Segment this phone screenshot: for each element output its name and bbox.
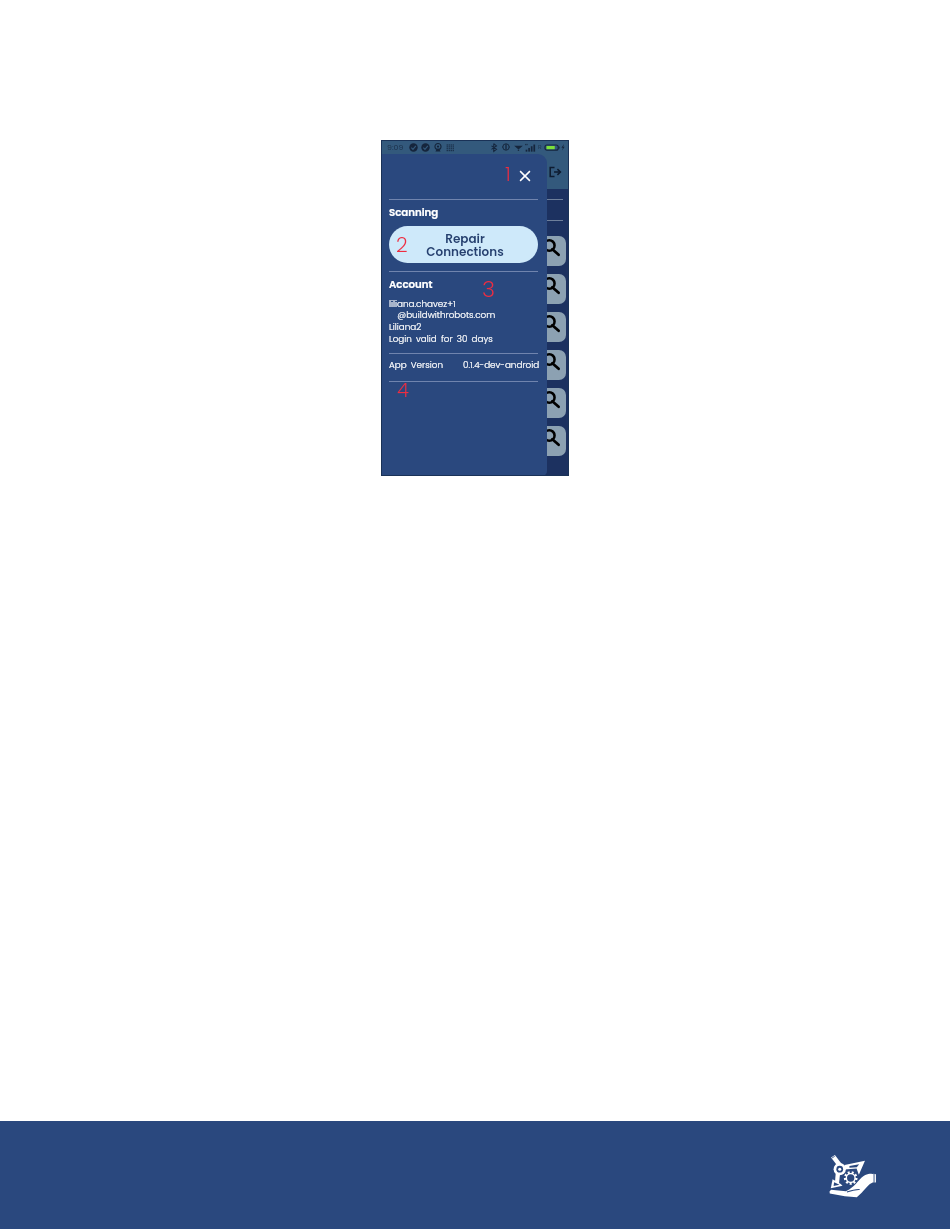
button[interactable]: Log out [549, 166, 561, 178]
staticText: 4 [397, 376, 410, 403]
button[interactable]: Search [522, 426, 566, 456]
staticText: 3 [482, 274, 496, 305]
staticText: Repair Connections [426, 230, 504, 260]
staticText: 1 [505, 161, 511, 188]
staticText: Account [389, 277, 433, 291]
button[interactable]: Repair Connections [389, 226, 538, 263]
staticText: App Version [389, 359, 443, 371]
staticText: 0.1.4-dev-android [463, 359, 540, 371]
staticText: 9:09 [387, 142, 404, 153]
staticText: liliana.chavez+1 @buildwithrobots.com Li… [389, 298, 496, 346]
staticText: 2 [396, 231, 408, 259]
button[interactable]: Search [522, 236, 566, 266]
button[interactable]: Search [522, 274, 566, 304]
button[interactable]: Search [522, 312, 566, 342]
button[interactable]: Search [522, 388, 566, 418]
staticText: R [538, 143, 542, 151]
button[interactable]: Close [515, 166, 535, 186]
button[interactable]: Search [522, 350, 566, 380]
staticText: Scanning [389, 205, 439, 219]
